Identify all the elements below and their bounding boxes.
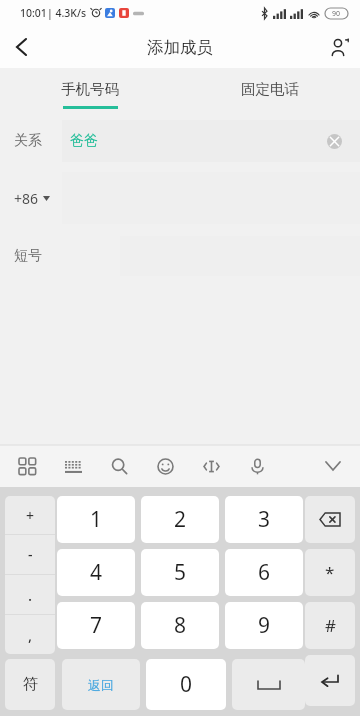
button[interactable]: , [5,615,55,654]
button[interactable]: Back [0,26,42,68]
staticText: 添加成员 [147,37,213,58]
button[interactable]: 8 [141,602,219,649]
staticText: # [325,614,336,637]
button[interactable]: 0 [146,659,226,710]
button[interactable]: 手机号码 [0,68,180,120]
button[interactable]: Keyboard layout [60,453,86,479]
button[interactable]: - [5,535,55,574]
staticText: 0 [180,670,193,699]
button[interactable]: Space [232,659,305,710]
staticText: 短号 [14,247,42,265]
button[interactable]: # [305,602,355,649]
staticText: 爸爸 [70,132,98,150]
staticText: +86 [14,189,39,208]
button[interactable]: 6 [225,549,303,596]
button[interactable]: Backspace [305,496,355,543]
staticText: 符 [23,675,38,694]
staticText: 返回 [88,677,114,693]
button[interactable]: Apps [14,453,40,479]
staticText: 7 [90,611,103,640]
staticText: , [28,625,33,645]
button[interactable]: 1 [57,496,135,543]
button[interactable]: Enter [305,655,355,706]
staticText: 1 [90,505,103,534]
staticText: 8 [174,611,187,640]
button[interactable]: 7 [57,602,135,649]
staticText: * [325,561,335,584]
button[interactable]: 5 [141,549,219,596]
staticText: 6 [258,558,271,587]
button[interactable]: +86 [14,189,50,208]
button[interactable]: . [5,575,55,614]
button[interactable]: Hide keyboard [320,453,346,479]
button[interactable]: 3 [225,496,303,543]
button[interactable]: 符 [5,659,55,710]
button[interactable]: 返回 [62,659,140,710]
staticText: + [26,506,35,525]
button[interactable]: Emoji [152,453,178,479]
button[interactable]: Add member [318,26,360,68]
button[interactable]: * [305,549,355,596]
button[interactable]: 2 [141,496,219,543]
staticText: 手机号码 [61,80,119,98]
staticText: 5 [174,558,187,587]
staticText: 固定电话 [241,80,299,98]
staticText: - [28,545,33,564]
button[interactable]: 固定电话 [180,68,360,120]
button[interactable]: Cursor [198,453,224,479]
staticText: 3 [258,505,271,534]
staticText: 关系 [14,132,42,150]
staticText: 2 [174,505,187,534]
button[interactable]: 9 [225,602,303,649]
button[interactable]: Clear [322,129,346,153]
button[interactable]: 4 [57,549,135,596]
staticText: 10:01| 4.3K/s [20,6,87,20]
staticText: 90 [332,9,341,19]
staticText: 4 [90,558,103,587]
staticText: . [28,585,33,605]
button[interactable]: Search [106,453,132,479]
button[interactable]: + [5,496,55,534]
staticText: 9 [258,611,271,640]
button[interactable]: Voice input [244,453,270,479]
